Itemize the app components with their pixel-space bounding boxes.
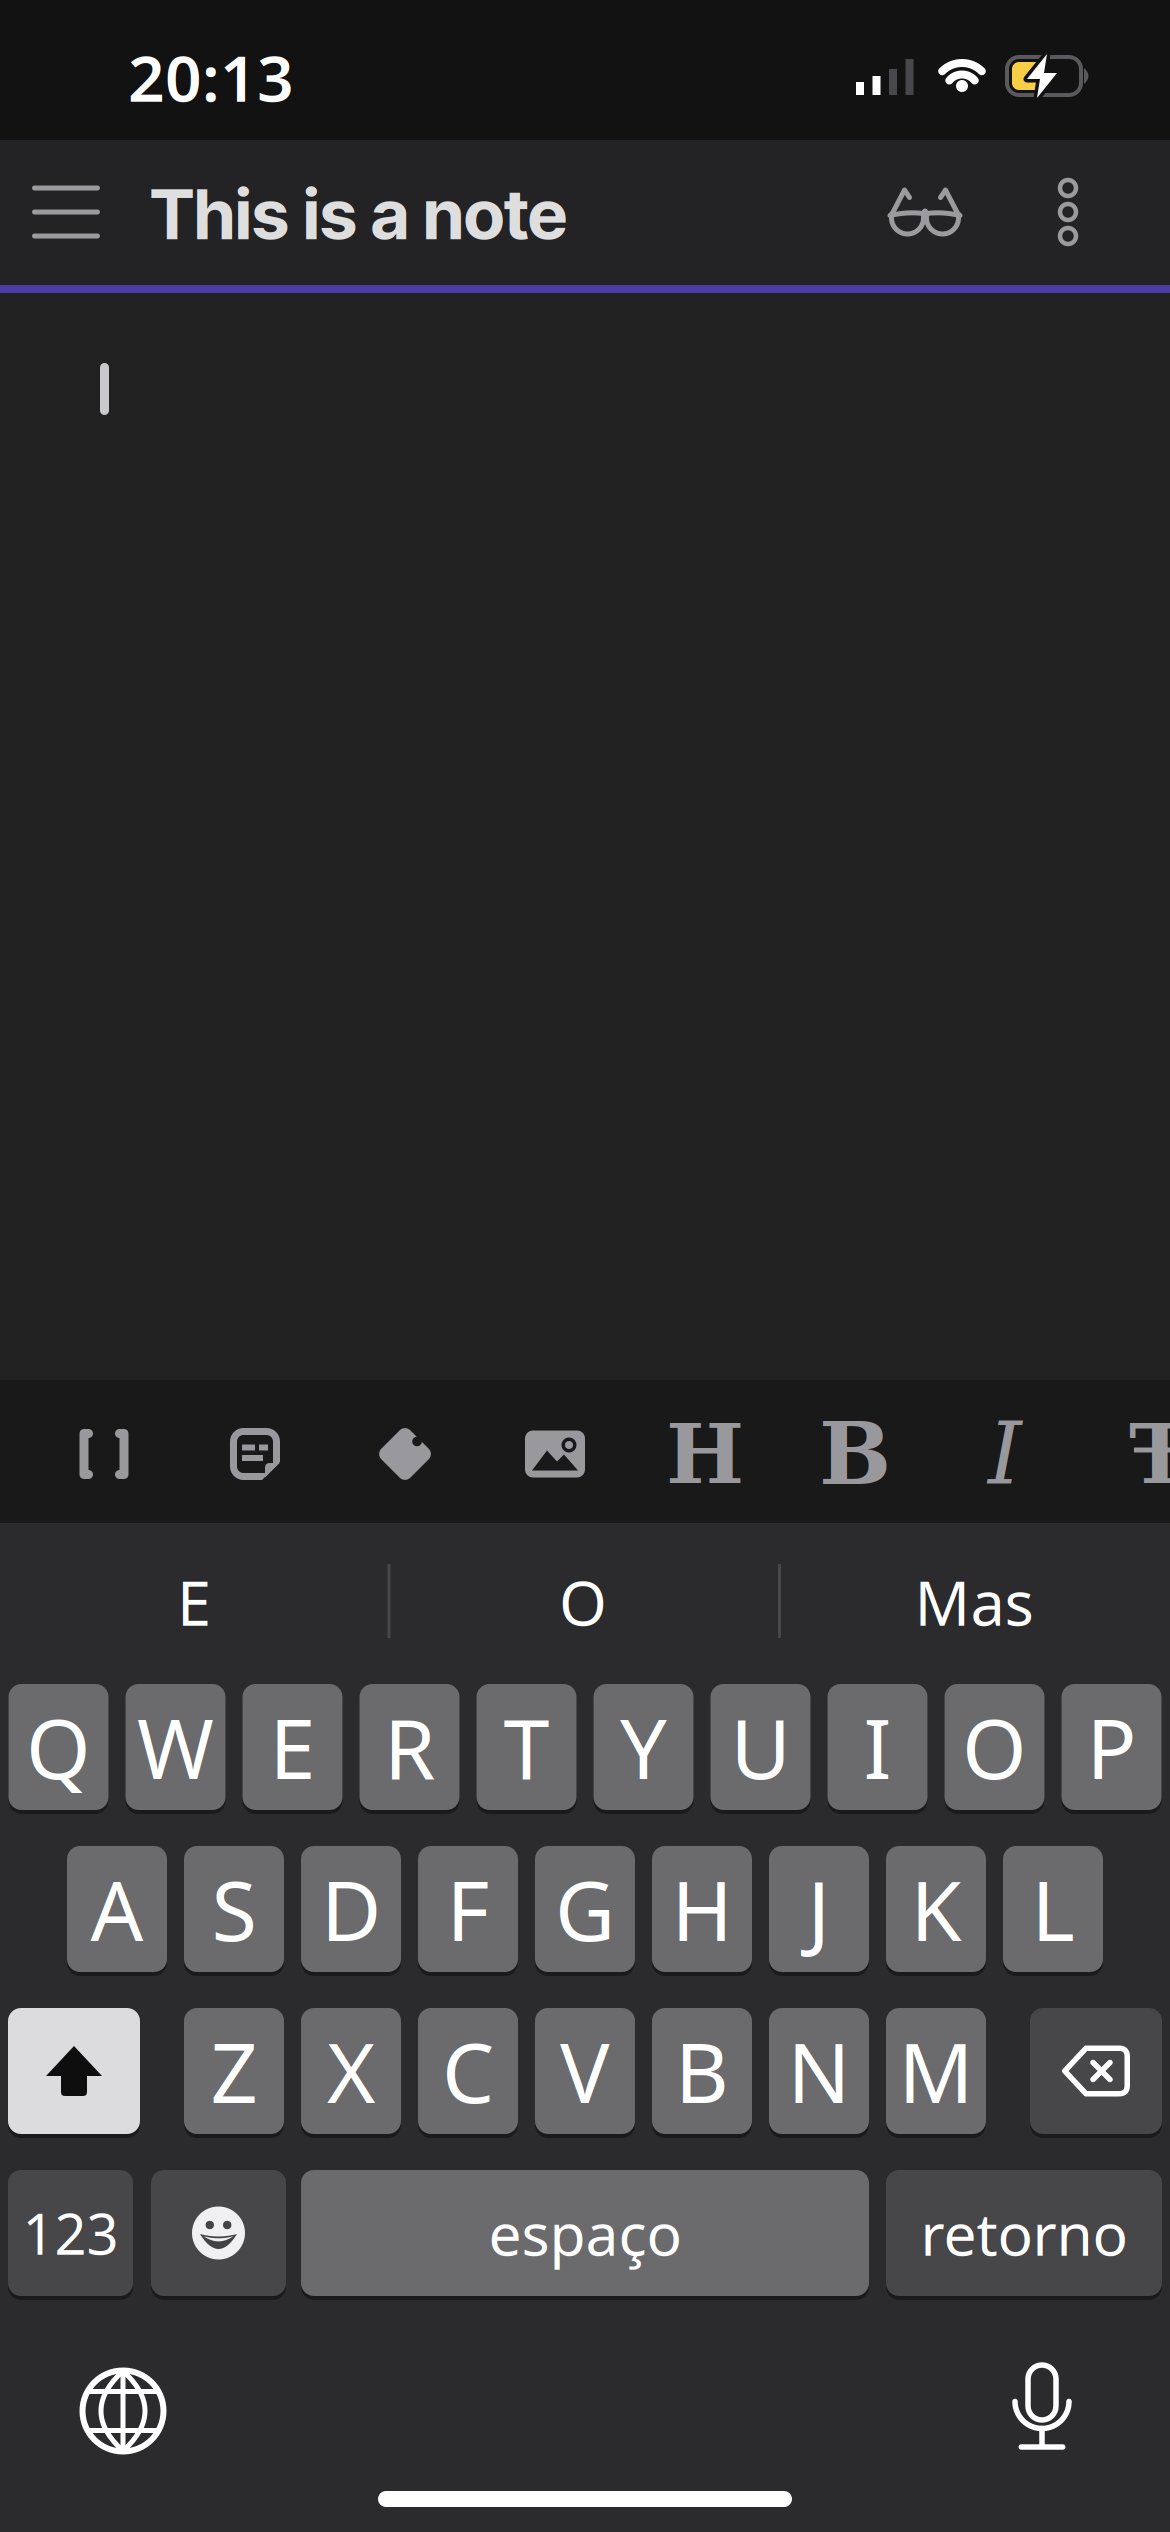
staticText: A [90, 1854, 143, 1964]
button[interactable]: A [67, 1846, 167, 1972]
button[interactable]: Q [8, 1684, 108, 1810]
button[interactable]: F [418, 1846, 518, 1972]
staticText: E [269, 1692, 315, 1802]
staticText: I [988, 1404, 1022, 1504]
staticText: 20:13 [128, 34, 294, 119]
button[interactable]: W [125, 1684, 225, 1810]
staticText: I [863, 1692, 891, 1802]
button[interactable]: G [535, 1846, 635, 1972]
staticText: R [384, 1692, 435, 1802]
staticText: L [1031, 1854, 1074, 1964]
button[interactable]: Numbers [8, 2170, 133, 2296]
staticText: T [503, 1692, 549, 1802]
staticText: D [321, 1854, 381, 1964]
staticText: U [730, 1692, 790, 1802]
staticText: C [442, 2016, 494, 2126]
staticText: H [666, 1405, 744, 1502]
staticText: J [807, 1854, 830, 1964]
staticText: M [898, 2016, 973, 2126]
staticText: W [137, 1692, 214, 1802]
button[interactable]: L [1003, 1846, 1103, 1972]
button[interactable]: K [886, 1846, 986, 1972]
button[interactable]: Return [886, 2170, 1162, 2296]
button[interactable]: Mas [778, 1527, 1170, 1677]
button[interactable]: Insert note [195, 1382, 315, 1525]
button[interactable]: E [0, 1527, 388, 1677]
staticText: E [177, 1561, 211, 1643]
staticText: 123 [22, 2196, 118, 2270]
staticText: P [1086, 1692, 1136, 1802]
staticText: O [559, 1561, 607, 1643]
button[interactable]: C [418, 2008, 518, 2134]
button[interactable]: O [388, 1527, 778, 1677]
button[interactable]: More options [1038, 139, 1098, 284]
button[interactable]: E [242, 1684, 342, 1810]
staticText: S [211, 1854, 256, 1964]
button[interactable]: T [476, 1684, 576, 1810]
button[interactable]: R [359, 1684, 459, 1810]
staticText: H [671, 1854, 732, 1964]
staticText: B [819, 1404, 891, 1504]
staticText: O [962, 1692, 1027, 1802]
button[interactable]: Italic [945, 1382, 1065, 1525]
staticText: Mas [914, 1561, 1033, 1643]
button[interactable]: M [886, 2008, 986, 2134]
button[interactable]: Insert link [44, 1382, 164, 1525]
staticText: B [675, 2016, 729, 2126]
staticText: Y [620, 1692, 667, 1802]
button[interactable]: N [769, 2008, 869, 2134]
staticText: retorno [920, 2194, 1127, 2272]
staticText: Q [26, 1692, 91, 1802]
button[interactable]: I [827, 1684, 927, 1810]
staticText: F [446, 1854, 489, 1964]
button[interactable]: J [769, 1846, 869, 1972]
button[interactable]: Shift [8, 2008, 140, 2134]
button[interactable]: Strikethrough [1115, 1382, 1170, 1525]
button[interactable]: V [535, 2008, 635, 2134]
staticText: V [560, 2016, 610, 2126]
staticText: Z [210, 2016, 257, 2126]
staticText: T [1129, 1405, 1170, 1502]
button[interactable]: H [652, 1846, 752, 1972]
button[interactable]: Bold [795, 1382, 915, 1525]
button[interactable]: D [301, 1846, 401, 1972]
button[interactable]: Preview [873, 139, 977, 284]
staticText: espaço [488, 2194, 681, 2272]
button[interactable]: Insert tag [345, 1382, 465, 1525]
button[interactable]: Heading [645, 1382, 765, 1525]
staticText: G [555, 1854, 615, 1964]
staticText: This is a note [150, 172, 567, 256]
button[interactable]: Dictation [987, 2343, 1097, 2473]
button[interactable]: Emoji [151, 2170, 286, 2296]
button[interactable]: Insert image [495, 1382, 615, 1525]
button[interactable]: X [301, 2008, 401, 2134]
button[interactable]: Menu [16, 139, 116, 284]
button[interactable]: U [710, 1684, 810, 1810]
button[interactable]: Z [184, 2008, 284, 2134]
button[interactable]: Next keyboard [58, 2346, 188, 2476]
staticText: X [327, 2016, 375, 2126]
button[interactable]: P [1061, 1684, 1161, 1810]
staticText: N [787, 2016, 850, 2126]
button[interactable]: Space [301, 2170, 869, 2296]
button[interactable]: Delete [1030, 2008, 1162, 2134]
button[interactable]: B [652, 2008, 752, 2134]
button[interactable]: S [184, 1846, 284, 1972]
staticText: K [910, 1854, 961, 1964]
button[interactable]: Y [593, 1684, 693, 1810]
button[interactable]: O [944, 1684, 1044, 1810]
